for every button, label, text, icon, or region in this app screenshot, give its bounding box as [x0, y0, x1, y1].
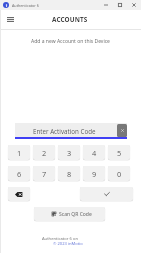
button[interactable]: 7 [33, 166, 55, 181]
button[interactable]: 6 [8, 166, 30, 181]
staticText: 9 [92, 169, 97, 179]
button[interactable]: 1 [8, 145, 30, 160]
staticText: Enter Activation Code [33, 127, 96, 135]
button[interactable]: 3 [58, 145, 80, 160]
button[interactable]: Clear [117, 124, 127, 137]
staticText: Add a new Account on this Device [0, 38, 141, 45]
staticText: 0 [117, 169, 122, 179]
button[interactable]: 0 [108, 166, 130, 181]
button[interactable]: Enter Activation Code [15, 123, 127, 137]
button[interactable]: Scan QR Code [34, 207, 105, 221]
button[interactable]: Confirm [80, 187, 133, 201]
button[interactable]: 5 [108, 145, 130, 160]
button[interactable]: 9 [83, 166, 105, 181]
button[interactable]: Close [127, 0, 141, 10]
button[interactable]: 2 [33, 145, 55, 160]
staticText: 3 [67, 148, 72, 158]
button[interactable]: Backspace [8, 187, 30, 201]
staticText: 7 [42, 169, 47, 179]
staticText: 1 [17, 148, 22, 158]
staticText: Authenticator 6 [12, 3, 39, 8]
staticText: 8 [67, 169, 72, 179]
button[interactable]: 4 [83, 145, 105, 160]
button[interactable]: © 2023 inMotio [53, 241, 83, 247]
staticText: 4 [92, 148, 97, 158]
button[interactable]: Minimize [99, 0, 113, 10]
staticText: 2 [42, 148, 47, 158]
staticText: 5 [117, 148, 122, 158]
staticText: ACCOUNTS [52, 15, 88, 24]
button[interactable]: 8 [58, 166, 80, 181]
staticText: Authenticator 6 on [42, 236, 78, 242]
button[interactable]: Maximize [113, 0, 127, 10]
button[interactable]: Menu [0, 12, 20, 27]
staticText: Scan QR Code [59, 211, 92, 218]
staticText: 6 [17, 169, 22, 179]
